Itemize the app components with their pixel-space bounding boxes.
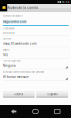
- staticText: Al borrar mensaje: [3, 75, 29, 79]
- staticText: Contraseña: [3, 27, 14, 30]
- staticText: Servidor: [3, 37, 11, 40]
- staticText: Siguiente: [47, 93, 57, 96]
- button[interactable]: Anterior: [3, 91, 35, 98]
- staticText: Ninguna: [3, 64, 16, 67]
- staticText: Puerto: [3, 49, 9, 51]
- staticText: Anterior: [14, 93, 23, 96]
- staticText: 13:44: [62, 0, 70, 4]
- staticText: ••••••: [3, 31, 15, 34]
- staticText: Ajustes de la cuenta: [7, 6, 38, 9]
- staticText: Nombre de usuario: [3, 15, 22, 17]
- staticText: mi@correo.com: [3, 20, 26, 23]
- button[interactable]: Recents: [49, 105, 65, 118]
- button[interactable]: Home: [27, 105, 43, 118]
- staticText: imap.01.webnode.com: [3, 42, 36, 45]
- button[interactable]: Siguiente: [36, 91, 68, 98]
- staticText: 143: [3, 53, 8, 57]
- staticText: Tipo de seguridad: [3, 59, 20, 62]
- staticText: Eliminar correo electrónico del servidor: [3, 71, 44, 73]
- button[interactable]: Back: [6, 105, 22, 118]
- button[interactable]: Correo: [0, 4, 7, 11]
